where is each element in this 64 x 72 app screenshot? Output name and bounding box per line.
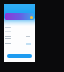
button[interactable]: Continue	[7, 54, 32, 58]
button[interactable]	[5, 13, 34, 20]
